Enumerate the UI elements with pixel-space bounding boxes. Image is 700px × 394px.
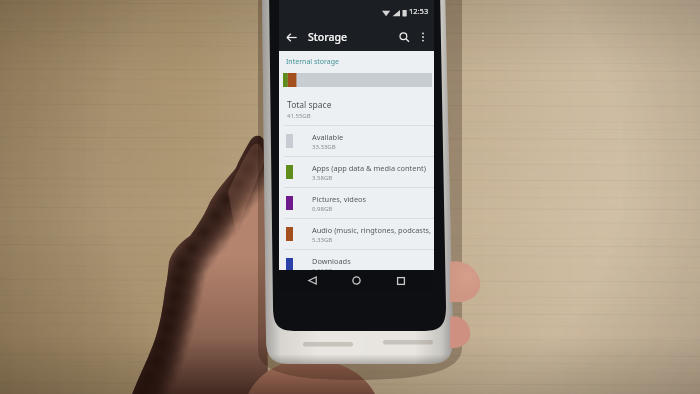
staticText: Internal storage — [286, 57, 339, 67]
staticText: Available — [312, 132, 344, 142]
button[interactable]: Available — [279, 125, 434, 156]
button[interactable]: More options — [415, 29, 431, 45]
button[interactable]: Downloads — [279, 249, 434, 280]
staticText: Storage — [308, 30, 347, 44]
button[interactable]: Audio (music, ringtones, podcasts, et.. — [279, 218, 434, 249]
staticText: Total space — [287, 99, 332, 111]
button[interactable]: Pictures, videos — [279, 187, 434, 218]
staticText: Downloads — [312, 256, 351, 266]
staticText: 3.58GB — [312, 174, 333, 182]
button[interactable]: Back — [279, 25, 303, 49]
staticText: Pictures, videos — [312, 194, 367, 204]
button[interactable]: Search — [393, 26, 415, 48]
staticText: 5.33GB — [312, 236, 333, 244]
staticText: Apps (app data & media content) — [312, 163, 426, 173]
button[interactable]: Home — [346, 270, 367, 291]
staticText: 33.33GB — [312, 143, 336, 151]
staticText: 0.01GB — [312, 267, 333, 275]
staticText: 41.55GB — [287, 112, 311, 120]
staticText: 0.98GB — [312, 205, 333, 213]
staticText: 12:53 — [409, 6, 429, 16]
staticText: Audio (music, ringtones, podcasts, et.. — [312, 225, 434, 235]
button[interactable]: Apps (app data & media content) — [279, 156, 434, 187]
button[interactable]: Recents — [390, 270, 411, 291]
button[interactable]: Back — [302, 270, 323, 291]
